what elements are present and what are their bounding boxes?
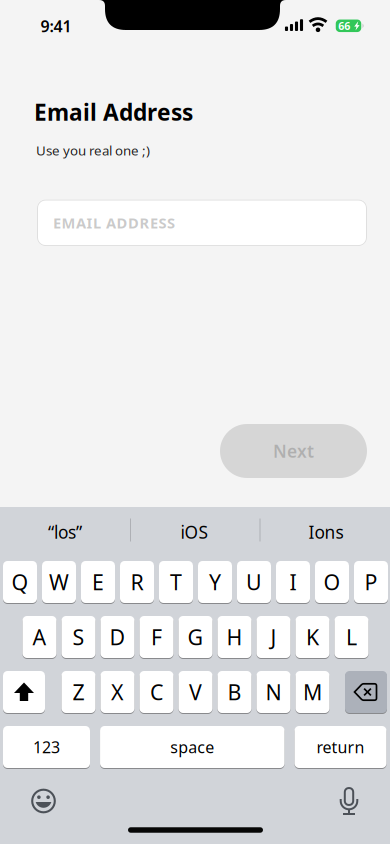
button[interactable]: B — [217, 671, 251, 713]
button[interactable]: F — [139, 616, 173, 658]
button[interactable]: Y — [198, 561, 232, 603]
staticText: E — [92, 568, 104, 596]
button[interactable]: space — [100, 726, 285, 768]
button[interactable]: O — [315, 561, 349, 603]
button[interactable]: T — [159, 561, 193, 603]
staticText: Ions — [308, 520, 343, 543]
staticText: X — [111, 678, 124, 706]
staticText: F — [151, 623, 162, 651]
button[interactable]: V — [178, 671, 212, 713]
button[interactable]: A — [22, 616, 56, 658]
staticText: 66 — [338, 19, 350, 33]
button[interactable]: J — [256, 616, 290, 658]
button[interactable]: R — [120, 561, 154, 603]
staticText: B — [227, 678, 241, 706]
staticText: 123 — [33, 736, 60, 758]
staticText: EMAIL ADDRESS — [53, 213, 175, 233]
staticText: Use you real one ;) — [36, 141, 150, 159]
staticText: H — [226, 623, 242, 651]
staticText: S — [72, 623, 84, 651]
staticText: P — [364, 568, 377, 596]
staticText: return — [316, 736, 364, 758]
staticText: J — [270, 623, 276, 651]
staticText: Email Address — [34, 97, 193, 127]
button[interactable]: H — [217, 616, 251, 658]
button[interactable]: N — [256, 671, 290, 713]
staticText: C — [150, 678, 163, 706]
staticText: T — [170, 568, 182, 596]
button[interactable]: S — [61, 616, 95, 658]
staticText: space — [170, 736, 214, 758]
button[interactable]: Z — [61, 671, 95, 713]
button[interactable]: K — [295, 616, 329, 658]
button[interactable]: U — [237, 561, 271, 603]
button[interactable]: P — [354, 561, 388, 603]
staticText: O — [323, 568, 340, 596]
button[interactable]: “los” — [5, 512, 125, 552]
staticText: iOS — [180, 520, 208, 543]
button[interactable]: Emoji — [21, 779, 65, 823]
button[interactable]: G — [178, 616, 212, 658]
staticText: 9:41 — [40, 15, 71, 37]
staticText: Z — [72, 678, 84, 706]
staticText: A — [32, 623, 46, 651]
staticText: U — [246, 568, 262, 596]
staticText: Next — [273, 439, 314, 462]
staticText: G — [187, 623, 203, 651]
staticText: K — [306, 623, 319, 651]
staticText: “los” — [48, 520, 82, 543]
staticText: I — [289, 568, 296, 596]
button[interactable]: Delete — [345, 671, 387, 713]
button[interactable]: E — [81, 561, 115, 603]
button[interactable]: C — [139, 671, 173, 713]
staticText: L — [346, 623, 357, 651]
staticText: Q — [11, 568, 28, 596]
button[interactable]: M — [295, 671, 329, 713]
staticText: D — [109, 623, 125, 651]
staticText: W — [49, 568, 69, 596]
staticText: V — [189, 678, 202, 706]
button[interactable]: I — [276, 561, 310, 603]
button[interactable]: 123 — [3, 726, 90, 768]
button[interactable]: return — [294, 726, 386, 768]
button[interactable]: X — [100, 671, 134, 713]
button[interactable]: W — [42, 561, 76, 603]
button[interactable]: Dictation — [327, 779, 371, 823]
staticText: M — [303, 678, 322, 706]
button[interactable]: iOS — [134, 512, 254, 552]
staticText: Y — [209, 568, 221, 596]
button[interactable]: D — [100, 616, 134, 658]
button[interactable]: Next — [220, 424, 367, 478]
button[interactable]: Shift — [3, 671, 45, 713]
staticText: N — [265, 678, 281, 706]
button[interactable]: L — [334, 616, 368, 658]
staticText: R — [130, 568, 143, 596]
button[interactable]: Q — [3, 561, 37, 603]
button[interactable]: Ions — [266, 512, 386, 552]
button[interactable]: Email Address — [37, 200, 367, 246]
